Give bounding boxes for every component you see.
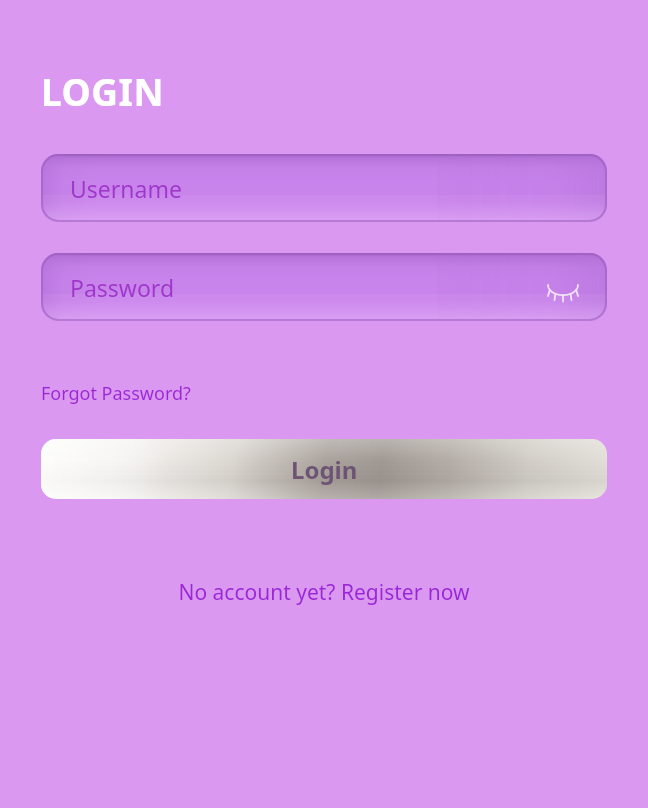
staticText: Forgot Password? — [41, 381, 191, 406]
staticText: Login — [291, 453, 358, 486]
button[interactable]: Show password — [541, 265, 585, 309]
button[interactable]: Password — [41, 253, 607, 321]
staticText: Username — [70, 173, 182, 204]
button[interactable]: Username — [41, 154, 607, 222]
button[interactable]: No account yet? Register now — [41, 575, 607, 610]
button[interactable]: Forgot Password? — [41, 379, 191, 408]
staticText: No account yet? Register now — [178, 578, 470, 607]
button[interactable]: Login — [41, 439, 607, 499]
staticText: LOGIN — [41, 66, 164, 116]
staticText: Password — [70, 272, 175, 303]
